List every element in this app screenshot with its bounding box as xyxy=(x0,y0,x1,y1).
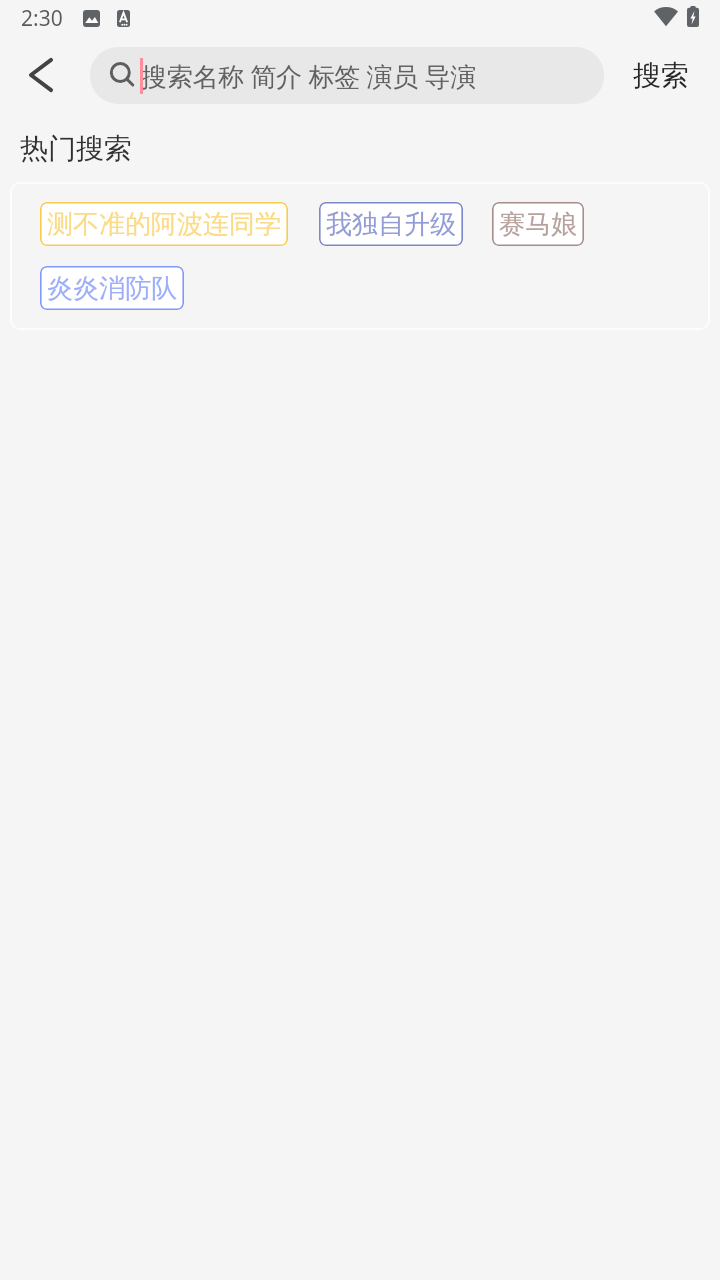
staticText: 搜索 xyxy=(633,58,689,93)
staticText: 我独自升级 xyxy=(326,208,456,241)
button[interactable]: 我独自升级 xyxy=(319,202,463,246)
staticText: 搜索名称 简介 标签 演员 导演 xyxy=(141,58,477,94)
staticText: 炎炎消防队 xyxy=(47,272,177,305)
staticText: 赛马娘 xyxy=(499,208,577,241)
button[interactable]: 赛马娘 xyxy=(492,202,584,246)
button[interactable]: 搜索 xyxy=(601,40,720,110)
staticText: 2:30 xyxy=(21,4,63,33)
button[interactable]: Back xyxy=(0,40,82,110)
button[interactable]: 炎炎消防队 xyxy=(40,266,184,310)
staticText: 测不准的阿波连同学 xyxy=(47,208,281,241)
staticText: 热门搜索 xyxy=(20,131,132,166)
button[interactable]: 测不准的阿波连同学 xyxy=(40,202,288,246)
button[interactable]: 搜索名称 简介 标签 演员 导演 xyxy=(90,47,604,104)
